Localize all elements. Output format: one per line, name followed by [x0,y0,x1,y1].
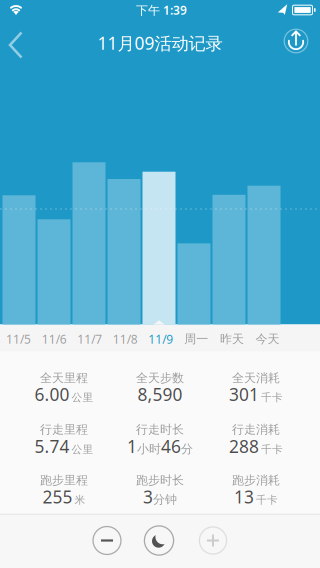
staticText: 13 [234,485,254,508]
staticText: 分 [181,442,193,456]
button[interactable]: 周一 [179,325,214,352]
button[interactable]: Back [0,20,44,64]
staticText: 跑步消耗 [232,473,280,488]
button[interactable]: 今天 [250,325,285,352]
staticText: 公里 [71,391,93,404]
staticText: 分钟 [153,492,177,507]
staticText: 11月09活动记录 [97,31,222,54]
staticText: 全天消耗 [232,371,280,385]
staticText: 11/7 [77,331,102,347]
staticText: 288 [229,435,259,458]
staticText: 公里 [71,443,93,456]
button[interactable]: 11/9 [143,325,178,352]
staticText: 千卡 [256,493,278,506]
staticText: 1 [127,435,137,458]
staticText: 行走里程 [40,422,88,437]
staticText: 全天步数 [136,371,184,385]
button[interactable]: 11/5 [1,325,36,352]
staticText: 小时 [137,442,161,456]
staticText: 8,590 [137,383,182,406]
button[interactable]: Sleep [142,523,176,557]
button[interactable]: 11/8 [108,325,143,352]
staticText: 255 [42,485,72,508]
staticText: 6.00 [34,383,69,406]
staticText: 今天 [255,332,279,346]
staticText: 11/9 [148,331,173,347]
staticText: 跑步里程 [40,473,88,488]
button[interactable]: 11/6 [37,325,72,352]
staticText: 跑步时长 [136,473,184,488]
button[interactable]: Sync [274,19,318,63]
staticText: 下午 1:39 [136,2,187,18]
staticText: 5.74 [34,435,69,458]
staticText: 46 [161,435,181,458]
staticText: 千卡 [261,391,283,404]
staticText: 11/5 [6,331,31,347]
staticText: 行走时长 [136,422,184,437]
button[interactable]: Increase [196,523,230,557]
button[interactable]: 11/7 [72,325,107,352]
staticText: 周一 [184,332,208,346]
staticText: 昨天 [220,332,244,346]
staticText: 3 [143,485,153,508]
staticText: 11/6 [42,331,67,347]
button[interactable]: 昨天 [214,325,249,352]
staticText: 千卡 [261,443,283,456]
button[interactable]: Decrease [90,523,124,557]
staticText: 11/8 [113,331,138,347]
staticText: 行走消耗 [232,422,280,437]
staticText: 全天里程 [40,371,88,385]
staticText: 301 [229,383,259,406]
staticText: 米 [74,493,85,506]
